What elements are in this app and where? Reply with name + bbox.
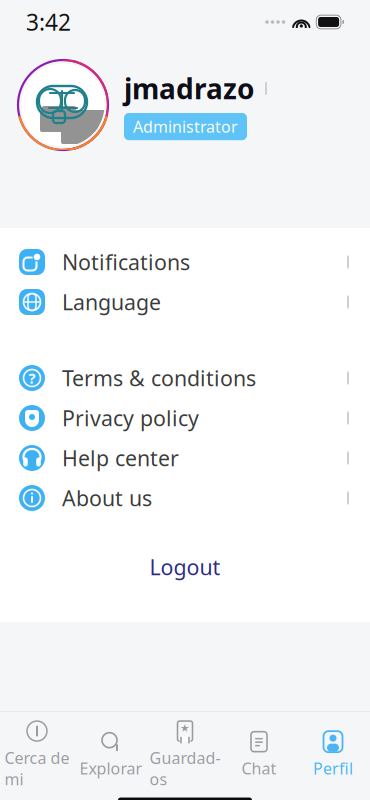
staticText: Notifications — [62, 248, 190, 276]
button[interactable]: Language — [0, 282, 370, 322]
button[interactable]: Profile photo — [16, 58, 110, 152]
staticText: Administrator — [133, 116, 238, 137]
button[interactable]: Privacy policy — [0, 398, 370, 438]
staticText: jmadrazo — [124, 70, 255, 107]
button[interactable]: Notifications — [0, 242, 370, 282]
button[interactable]: jmadrazo — [124, 70, 270, 107]
staticText: Chat — [241, 758, 276, 779]
staticText: About us — [62, 484, 152, 512]
button[interactable]: Perfil — [296, 731, 370, 779]
staticText: 3:42 — [26, 7, 71, 37]
staticText: Explorar — [79, 758, 142, 779]
staticText: Privacy policy — [62, 404, 199, 432]
staticText: Terms & conditions — [62, 364, 256, 392]
staticText: Help center — [62, 444, 179, 472]
button[interactable]: Logout — [0, 554, 370, 580]
button[interactable]: ? — [0, 358, 370, 398]
button[interactable]: Cerca de mi — [0, 720, 74, 790]
staticText: Guardados — [149, 747, 220, 790]
button[interactable]: ★ — [148, 720, 222, 790]
staticText: Logout — [149, 553, 220, 581]
button[interactable]: Help center — [0, 438, 370, 478]
staticText: ? — [28, 368, 35, 388]
button[interactable]: Chat — [222, 731, 296, 779]
staticText: ★ — [180, 722, 190, 734]
staticText: Perfil — [313, 758, 353, 779]
staticText: Cerca de mi — [4, 747, 69, 790]
button[interactable]: Explorar — [74, 731, 148, 779]
staticText: Language — [62, 288, 161, 316]
button[interactable]: About us — [0, 478, 370, 518]
